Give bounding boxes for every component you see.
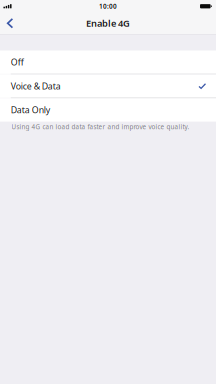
button[interactable]: Voice & Data [0, 74, 216, 98]
staticText: 10:00 [99, 2, 117, 11]
staticText: Enable 4G [86, 17, 130, 30]
button[interactable]: Back [0, 12, 30, 34]
staticText: Using 4G can load data faster and improv… [11, 123, 189, 131]
staticText: Data Only [11, 104, 50, 116]
button[interactable]: Off [0, 50, 216, 74]
staticText: Voice & Data [11, 80, 61, 92]
button[interactable]: Data Only [0, 98, 216, 122]
staticText: Off [11, 56, 24, 68]
